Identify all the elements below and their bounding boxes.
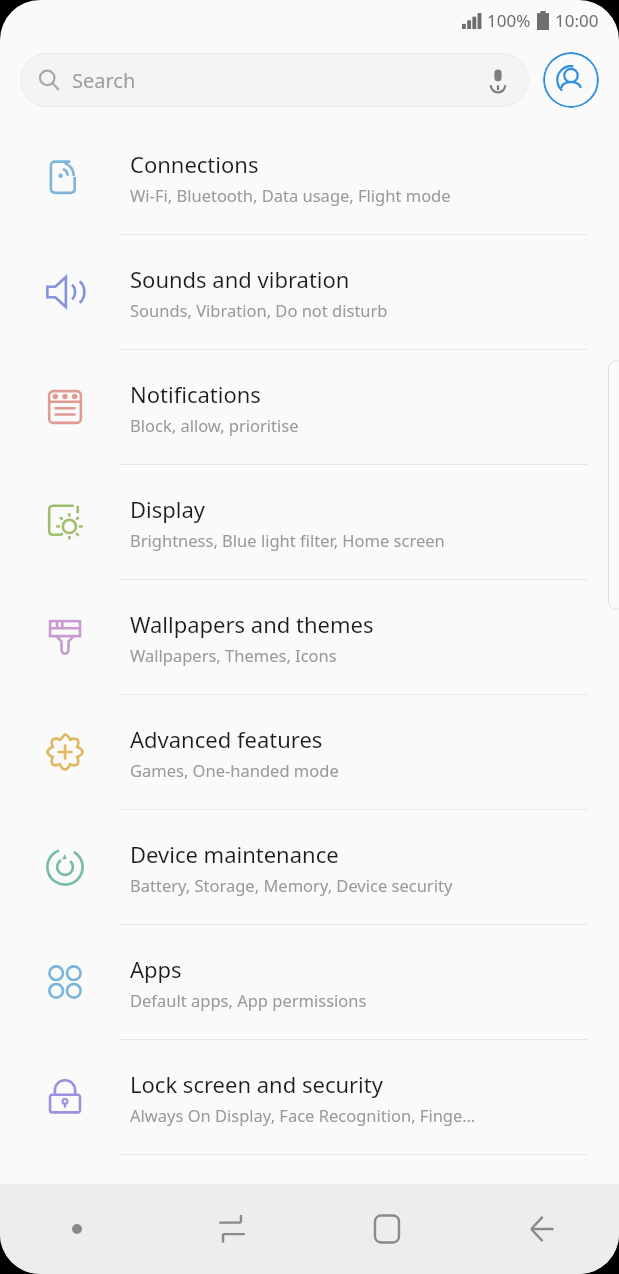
staticText: Default apps, App permissions: [130, 989, 367, 1011]
button[interactable]: Recents: [154, 1184, 309, 1274]
staticText: Display: [130, 494, 206, 524]
button[interactable]: Advanced features: [0, 695, 619, 810]
staticText: Wallpapers and themes: [130, 609, 374, 639]
button[interactable]: Connections: [0, 120, 619, 235]
staticText: Search: [72, 67, 136, 94]
staticText: Apps: [130, 954, 182, 984]
staticText: 10:00: [555, 9, 599, 32]
button[interactable]: Notifications: [0, 350, 619, 465]
staticText: Games, One-handed mode: [130, 759, 339, 781]
button[interactable]: Home: [309, 1184, 464, 1274]
button[interactable]: Wallpapers and themes: [0, 580, 619, 695]
staticText: Brightness, Blue light filter, Home scre…: [130, 529, 445, 551]
staticText: Wi-Fi, Bluetooth, Data usage, Flight mod…: [130, 184, 451, 206]
button[interactable]: Sounds and vibration: [0, 235, 619, 350]
button[interactable]: Lock screen and security: [0, 1040, 619, 1155]
staticText: Connections: [130, 149, 259, 179]
button[interactable]: Voice search: [483, 65, 513, 95]
staticText: 100%: [487, 9, 531, 32]
button[interactable]: Apps: [0, 925, 619, 1040]
button[interactable]: Device maintenance: [0, 810, 619, 925]
staticText: Device maintenance: [130, 839, 339, 869]
staticText: Lock screen and security: [130, 1069, 383, 1099]
button[interactable]: Back: [464, 1184, 619, 1274]
staticText: Always On Display, Face Recognition, Fin…: [130, 1104, 476, 1126]
button[interactable]: Search: [20, 53, 529, 107]
staticText: Battery, Storage, Memory, Device securit…: [130, 874, 453, 896]
staticText: Sounds and vibration: [130, 264, 350, 294]
staticText: Notifications: [130, 379, 261, 409]
staticText: Advanced features: [130, 724, 323, 754]
staticText: Sounds, Vibration, Do not disturb: [130, 299, 388, 321]
staticText: Block, allow, prioritise: [130, 414, 299, 436]
button[interactable]: Display: [0, 465, 619, 580]
button[interactable]: Account: [543, 52, 599, 108]
staticText: Wallpapers, Themes, Icons: [130, 644, 337, 666]
